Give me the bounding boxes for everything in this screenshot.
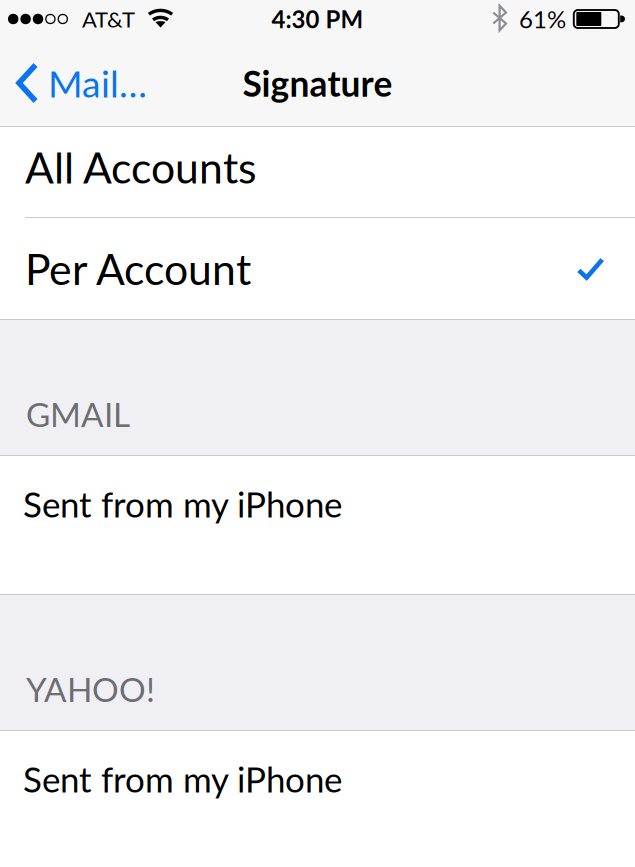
staticText: Per Account bbox=[25, 243, 251, 294]
staticText: 61% bbox=[519, 5, 566, 33]
staticText: AT&T bbox=[82, 6, 135, 32]
staticText: GMAIL bbox=[26, 394, 130, 434]
staticText: All Accounts bbox=[25, 141, 256, 193]
staticText: Mail… bbox=[48, 61, 147, 105]
button[interactable]: Sent from my iPhone bbox=[0, 456, 635, 594]
staticText: Sent from my iPhone bbox=[23, 758, 342, 800]
button[interactable]: Mail… bbox=[0, 40, 161, 126]
staticText: YAHOO! bbox=[26, 669, 155, 709]
button[interactable]: Per Account bbox=[0, 218, 635, 319]
staticText: 4:30 PM bbox=[271, 5, 363, 33]
button[interactable]: Sent from my iPhone bbox=[0, 731, 635, 867]
staticText: Sent from my iPhone bbox=[23, 483, 342, 525]
button[interactable]: All Accounts bbox=[0, 127, 635, 217]
staticText: Signature bbox=[242, 62, 392, 104]
